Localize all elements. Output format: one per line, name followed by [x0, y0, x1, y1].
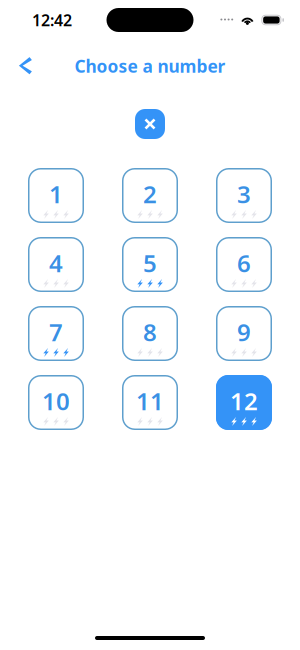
staticText: 12 — [230, 385, 258, 417]
staticText: 6 — [237, 247, 251, 279]
button[interactable]: 11 — [122, 375, 178, 430]
button[interactable]: 5 — [122, 237, 178, 292]
button[interactable]: 1 — [28, 168, 84, 223]
button[interactable]: 2 — [122, 168, 178, 223]
staticText: 5 — [143, 247, 157, 279]
button[interactable]: 3 — [216, 168, 272, 223]
button[interactable]: 12 — [216, 375, 272, 430]
button[interactable]: 10 — [28, 375, 84, 430]
staticText: 4 — [49, 247, 63, 279]
button[interactable]: Back — [0, 46, 47, 85]
button[interactable]: 4 — [28, 237, 84, 292]
staticText: 2 — [143, 178, 157, 210]
staticText: 9 — [237, 316, 251, 348]
staticText: 11 — [136, 385, 164, 417]
button[interactable]: 9 — [216, 306, 272, 361]
staticText: 7 — [49, 316, 63, 348]
staticText: 8 — [143, 316, 157, 348]
staticText: 10 — [42, 385, 70, 417]
staticText: Choose a number — [74, 54, 225, 77]
button[interactable]: 8 — [122, 306, 178, 361]
button[interactable]: 7 — [28, 306, 84, 361]
staticText: 12:42 — [32, 9, 72, 31]
button[interactable]: 6 — [216, 237, 272, 292]
staticText: 1 — [49, 178, 63, 210]
button[interactable]: Close — [135, 109, 165, 139]
staticText: 3 — [237, 178, 251, 210]
